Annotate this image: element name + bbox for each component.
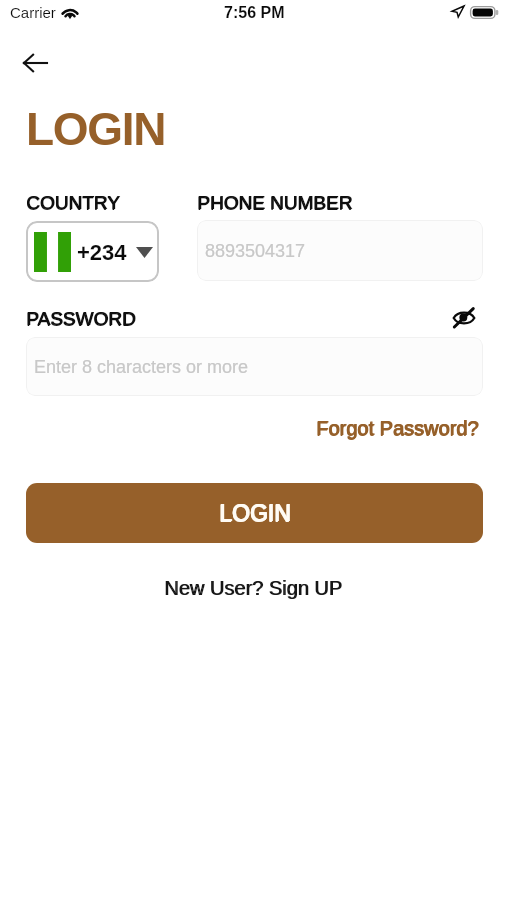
staticText: Forgot Password?: [317, 417, 480, 439]
button[interactable]: New User? Sign UP: [164, 577, 342, 599]
staticText: PASSWORD: [26, 308, 136, 329]
button[interactable]: LOGIN: [26, 483, 483, 543]
staticText: COUNTRY: [26, 193, 120, 214]
button[interactable]: 8893504317: [197, 220, 483, 281]
staticText: 8893504317: [205, 241, 306, 261]
staticText: Enter 8 characters or more: [34, 357, 249, 377]
staticText: New User? Sign UP: [164, 577, 342, 599]
staticText: Forgot Password?: [316, 417, 479, 439]
staticText: 7:56 PM: [224, 4, 285, 22]
button[interactable]: Forgot Password?: [316, 417, 479, 439]
staticText: COUNTRY: [26, 192, 120, 213]
staticText: Carrier: [10, 4, 56, 21]
staticText: PHONE NUMBER: [197, 192, 353, 213]
staticText: LOGIN: [219, 501, 291, 527]
button[interactable]: Show password: [446, 300, 482, 336]
staticText: Forgot Password?: [316, 418, 479, 440]
staticText: LOGIN: [26, 103, 166, 154]
button[interactable]: +234: [26, 221, 159, 282]
staticText: PASSWORD: [27, 308, 137, 329]
staticText: +234: [77, 240, 127, 265]
staticText: LOGIN: [220, 500, 292, 526]
staticText: New User? Sign UP: [165, 577, 343, 599]
staticText: LOGIN: [219, 500, 291, 526]
staticText: PHONE NUMBER: [197, 193, 353, 214]
button[interactable]: Back: [12, 40, 57, 85]
staticText: PHONE NUMBER: [198, 192, 354, 213]
staticText: PASSWORD: [26, 309, 136, 330]
button[interactable]: Enter 8 characters or more: [26, 337, 483, 396]
staticText: COUNTRY: [27, 192, 121, 213]
